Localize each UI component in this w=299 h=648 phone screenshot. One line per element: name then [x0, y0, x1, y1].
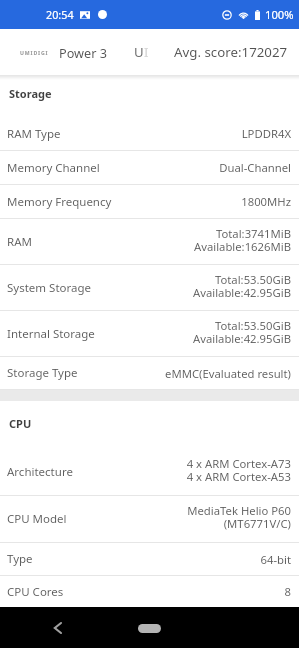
staticText: Storage: [9, 86, 52, 101]
staticText: 64-bit: [260, 552, 291, 567]
button[interactable]: Storage Type: [0, 357, 299, 390]
button[interactable]: RAM Type: [0, 117, 299, 151]
staticText: 100%: [265, 7, 294, 22]
staticText: Available:42.95GiB: [192, 331, 291, 346]
button[interactable]: Type: [0, 543, 299, 576]
button[interactable]: CPU Model: [0, 496, 299, 543]
staticText: Avg. score:172027: [174, 43, 288, 61]
button[interactable]: Home: [127, 617, 171, 639]
button[interactable]: Memory Frequency: [0, 185, 299, 219]
staticText: CPU Model: [7, 511, 67, 527]
staticText: Internal Storage: [7, 326, 95, 342]
staticText: Type: [7, 551, 33, 567]
staticText: 1800MHz: [241, 194, 291, 209]
staticText: 4 x ARM Cortex-A73: [186, 456, 291, 471]
staticText: Architecture: [7, 464, 73, 480]
staticText: Power 3: [59, 44, 108, 61]
staticText: Available:1626MiB: [193, 239, 291, 254]
button[interactable]: Architecture: [0, 449, 299, 496]
staticText: I: [144, 43, 149, 61]
staticText: eMMC(Evaluated result): [165, 366, 291, 381]
staticText: UMIDIGI: [20, 49, 49, 56]
staticText: Total:3741MiB: [215, 226, 291, 241]
button[interactable]: RAM: [0, 219, 299, 265]
staticText: MediaTek Helio P60: [187, 503, 291, 518]
staticText: Memory Frequency: [7, 194, 112, 210]
staticText: Total:53.50GiB: [214, 318, 291, 333]
button[interactable]: System Storage: [0, 265, 299, 311]
staticText: 4 x ARM Cortex-A53: [186, 469, 291, 484]
staticText: Total:53.50GiB: [214, 272, 291, 287]
staticText: CPU Cores: [7, 584, 64, 600]
button[interactable]: Back: [45, 615, 70, 640]
staticText: (MT6771V/C): [223, 516, 291, 531]
staticText: RAM Type: [7, 126, 61, 142]
button[interactable]: Internal Storage: [0, 311, 299, 357]
staticText: 20:54: [46, 7, 74, 22]
staticText: 8: [284, 584, 291, 599]
staticText: Storage Type: [7, 365, 78, 381]
button[interactable]: CPU Cores: [0, 576, 299, 607]
staticText: Available:42.95GiB: [192, 285, 291, 300]
staticText: Dual-Channel: [219, 160, 291, 175]
staticText: Memory Channel: [7, 160, 100, 176]
staticText: LPDDR4X: [241, 126, 291, 141]
staticText: CPU: [9, 416, 32, 431]
staticText: RAM: [7, 234, 32, 250]
staticText: System Storage: [7, 280, 92, 296]
staticText: U: [134, 43, 144, 61]
button[interactable]: Memory Channel: [0, 151, 299, 185]
